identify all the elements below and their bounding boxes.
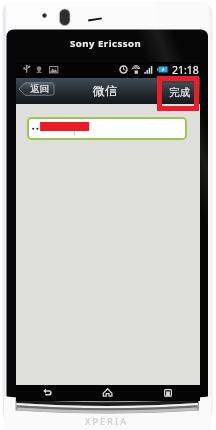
staticText: 微信 [93, 83, 117, 98]
button[interactable]: 完成 [162, 83, 200, 104]
staticText: 返回 [30, 83, 49, 95]
staticText: Sony Ericsson [70, 37, 142, 50]
button[interactable] [27, 117, 187, 140]
staticText: XPERIA [85, 415, 129, 427]
button[interactable]: 返回 [19, 82, 54, 96]
button[interactable]: Recent apps [139, 385, 200, 401]
button[interactable]: Home [78, 385, 139, 401]
staticText: 完成 [169, 86, 190, 99]
staticText: 21:18 [172, 63, 199, 77]
button[interactable]: Back [16, 385, 78, 401]
